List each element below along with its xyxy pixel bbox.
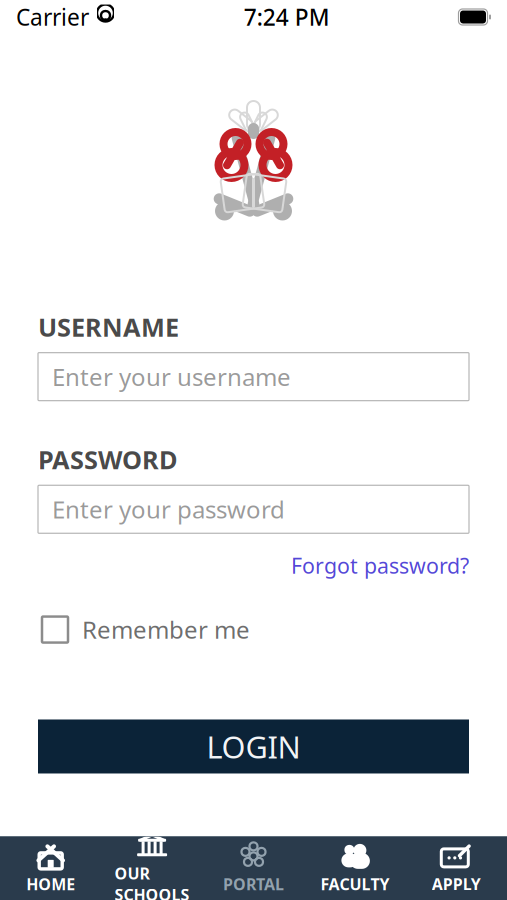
staticText: APPLY (432, 873, 481, 895)
staticText: FACULTY (320, 873, 389, 895)
staticText: Carrier (16, 2, 89, 32)
staticText: 7:24 PM (244, 2, 330, 32)
button[interactable]: PORTAL (203, 836, 304, 900)
button[interactable]: HOME (0, 836, 101, 900)
button[interactable]: Forgot password? (291, 545, 469, 586)
staticText: OUR SCHOOLS (115, 863, 190, 900)
button[interactable]: Remember me (42, 608, 250, 651)
staticText: Enter your password (52, 493, 285, 525)
button[interactable]: APPLY (406, 836, 507, 900)
staticText: Remember me (82, 614, 250, 645)
staticText: Enter your username (52, 361, 291, 393)
staticText: USERNAME (38, 310, 179, 344)
button[interactable]: FACULTY (304, 836, 406, 900)
button[interactable]: OUR SCHOOLS (101, 836, 203, 900)
button[interactable]: Enter your password (38, 485, 469, 533)
staticText: PORTAL (223, 873, 284, 895)
staticText: PASSWORD (38, 443, 178, 476)
staticText: LOGIN (206, 726, 300, 767)
button[interactable]: Enter your username (38, 353, 469, 401)
staticText: Forgot password? (291, 551, 469, 580)
button[interactable]: LOGIN (38, 719, 469, 773)
staticText: HOME (26, 873, 75, 895)
